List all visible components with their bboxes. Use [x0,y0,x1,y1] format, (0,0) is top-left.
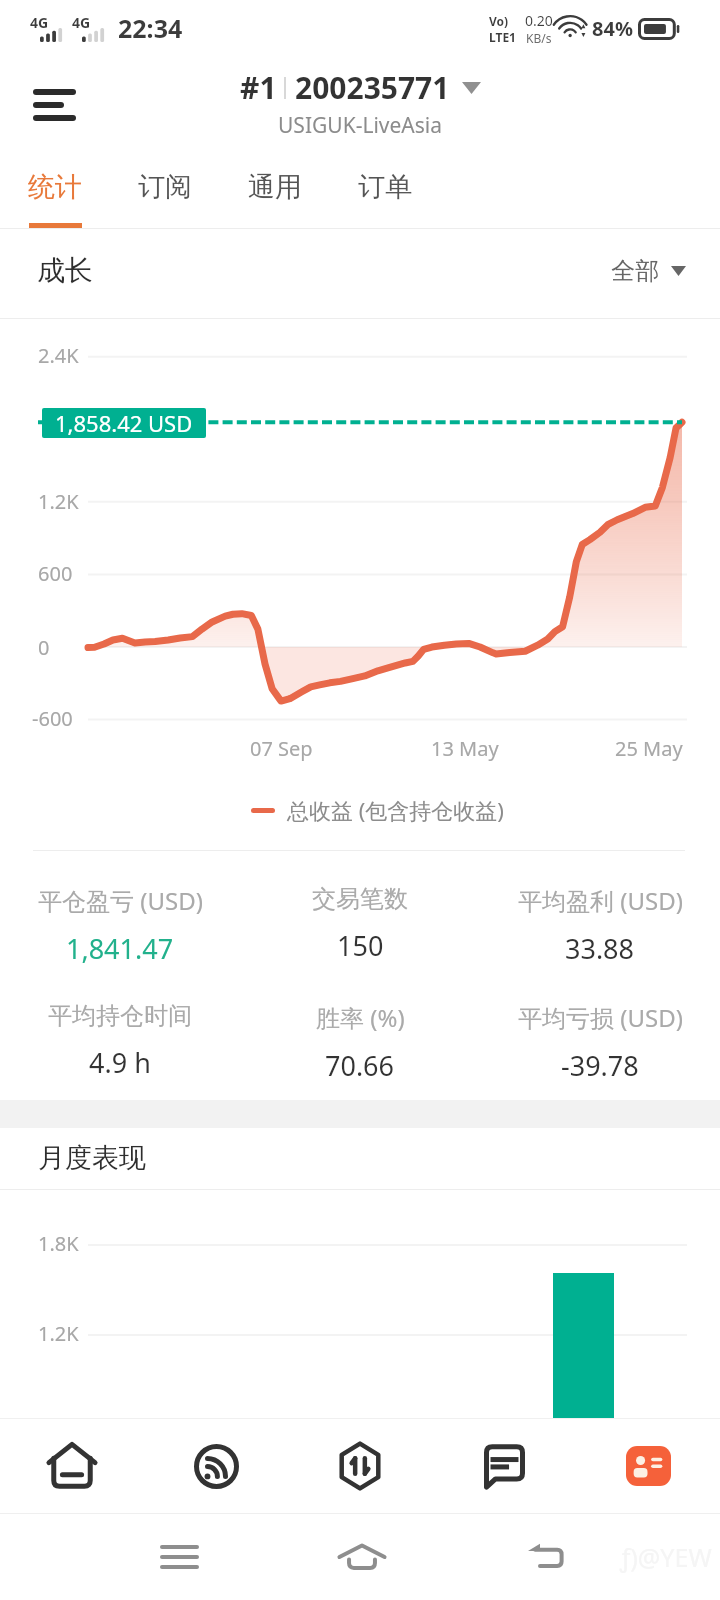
staticText: 1,841.47 [66,930,174,967]
staticText: 200235771 [295,67,450,108]
staticText: #1 [240,67,277,108]
button[interactable]: Home [302,1514,422,1600]
staticText: 总收益 (包含持仓收益) [287,795,504,825]
staticText: 4G [30,13,49,32]
button[interactable]: Profile [576,1419,720,1513]
button[interactable]: Signals [144,1419,288,1513]
staticText: Vo) [489,13,509,29]
staticText: 1.8K [38,1230,79,1257]
staticText: 4G [72,13,91,32]
button[interactable]: Trade [288,1419,432,1513]
staticText: 成长 [37,253,93,288]
staticText: 平均盈利 (USD) [518,884,683,917]
staticText: 月度表现 [38,1141,146,1175]
button[interactable]: 全部 [611,256,686,286]
staticText: KB/s [526,30,552,46]
staticText: 全部 [611,256,659,286]
staticText: 22:34 [118,11,183,45]
staticText: 1.2K [38,1320,79,1347]
staticText: 平仓盈亏 (USD) [38,884,203,917]
staticText: 33.88 [565,930,635,967]
staticText: -39.78 [561,1047,639,1084]
button[interactable]: 通用 [220,154,330,228]
staticText: 4.9 h [89,1044,151,1081]
staticText: 25 May [615,735,683,762]
staticText: 1.2K [38,488,79,515]
staticText: 平均亏损 (USD) [518,1001,683,1034]
button[interactable]: 订单 [330,154,440,228]
staticText: 84% [592,15,633,42]
staticText: 0 [38,634,50,661]
button[interactable]: 订阅 [110,154,220,228]
staticText: 0.20 [525,11,553,30]
staticText: -600 [32,705,73,732]
staticText: USIGUK-LiveAsia [278,111,443,140]
staticText: 通用 [248,170,302,204]
staticText: ƒ)@YEW [620,1540,712,1574]
staticText: 150 [337,927,384,964]
staticText: 13 May [431,735,499,762]
staticText: 2.4K [38,342,79,369]
staticText: 订阅 [138,170,192,204]
staticText: LTE1 [489,29,516,45]
staticText: 600 [38,560,73,587]
staticText: 交易笔数 [312,884,408,914]
button[interactable]: Chat [432,1419,576,1513]
button[interactable]: Menu [18,70,88,140]
button[interactable]: 统计 [0,154,110,228]
staticText: 订单 [358,170,412,204]
staticText: 平均持仓时间 [48,1001,192,1031]
staticText: 统计 [28,170,82,204]
staticText: 胜率 (%) [316,1001,405,1034]
button[interactable]: Recents [119,1514,239,1600]
staticText: 07 Sep [250,735,313,762]
staticText: 70.66 [325,1047,395,1084]
button[interactable]: Home [0,1419,144,1513]
staticText: 1,858.42 USD [55,408,193,438]
button[interactable]: Back [488,1514,608,1600]
